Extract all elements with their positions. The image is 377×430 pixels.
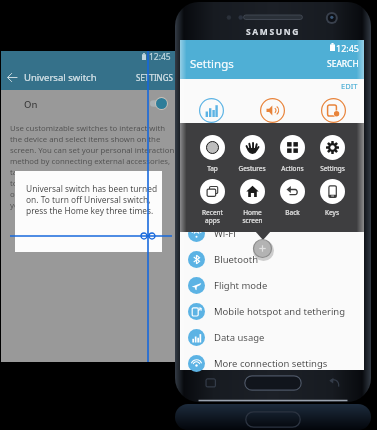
- button[interactable]: Recent apps: [205, 376, 218, 389]
- staticText: 12:45: [149, 51, 171, 63]
- staticText: Mobile hotspot and tethering: [214, 305, 346, 318]
- staticText: Bluetooth: [214, 253, 259, 266]
- staticText: on. To turn off Universal switch,: [26, 194, 151, 205]
- button[interactable]: Back: [328, 376, 341, 389]
- button[interactable]: SETTINGS: [136, 72, 177, 83]
- staticText: Settings: [190, 56, 234, 72]
- staticText: op: [10, 189, 20, 200]
- staticText: to: [10, 178, 18, 189]
- staticText: screen. You can set your personal intera…: [10, 145, 175, 156]
- button[interactable]: Bluetooth: [180, 246, 364, 272]
- staticText: Sound and vibration: [256, 124, 289, 141]
- button[interactable]: Sounds and vibration: [180, 168, 364, 194]
- staticText: Home screen: [242, 208, 263, 225]
- staticText: SEARCH: [327, 58, 359, 70]
- button[interactable]: More connection settings: [180, 350, 364, 376]
- button[interactable]: EDIT: [341, 79, 364, 91]
- button[interactable]: Gestures: [232, 135, 272, 173]
- button[interactable]: SEARCH: [327, 58, 364, 79]
- button[interactable]: Settings: [312, 135, 352, 173]
- staticText: Connections: [214, 149, 270, 162]
- staticText: ta: [10, 167, 18, 178]
- staticText: SAMSUNG: [246, 26, 300, 38]
- button[interactable]: Actions: [272, 135, 312, 173]
- staticText: More connection settings: [214, 357, 328, 370]
- button[interactable]: Recent apps: [192, 179, 232, 225]
- button[interactable]: Back: [1, 64, 24, 90]
- staticText: Keys: [325, 208, 339, 217]
- staticText: the device and select items shown on the: [10, 134, 161, 145]
- button[interactable]: Home screen: [232, 179, 272, 225]
- staticText: On: [24, 98, 38, 111]
- staticText: Sounds and vibration: [214, 175, 309, 188]
- button[interactable]: Display: [303, 94, 364, 126]
- staticText: Back: [285, 208, 300, 217]
- staticText: Use customizable switches to interact wi…: [10, 123, 166, 134]
- button[interactable]: Notifications: [180, 194, 364, 220]
- staticText: method by connecting external accessorie…: [10, 156, 171, 167]
- staticText: Wi-Fi: [214, 227, 236, 240]
- staticText: Gestures: [238, 164, 266, 173]
- button[interactable]: Data usage: [180, 94, 242, 126]
- staticText: Notifications: [214, 201, 271, 214]
- button[interactable]: Back: [272, 179, 312, 217]
- button[interactable]: Wi-Fi: [180, 220, 364, 246]
- staticText: 12:45: [336, 42, 360, 54]
- staticText: Tap: [207, 164, 218, 173]
- button[interactable]: Sound: [242, 94, 303, 126]
- button[interactable]: Keys: [312, 179, 352, 217]
- staticText: SETTINGS: [136, 72, 173, 83]
- staticText: Universal switch: [24, 71, 97, 84]
- button[interactable]: Tap: [192, 135, 232, 173]
- button[interactable]: Data usage: [180, 324, 364, 350]
- button[interactable]: Flight mode: [180, 272, 364, 298]
- staticText: EDIT: [341, 81, 358, 91]
- staticText: Settings: [320, 164, 345, 173]
- staticText: Recent apps: [202, 208, 223, 225]
- staticText: yo: [10, 200, 19, 211]
- staticText: Actions: [281, 164, 304, 173]
- staticText: Data usage: [214, 331, 265, 344]
- button[interactable]: On: [1, 90, 177, 114]
- staticText: Universal switch has been turned: [26, 183, 158, 194]
- button[interactable]: Connections: [180, 142, 364, 168]
- staticText: Flight mode: [214, 279, 268, 292]
- staticText: press the Home key three times.: [26, 205, 154, 216]
- button[interactable]: Mobile hotspot and tethering: [180, 298, 364, 324]
